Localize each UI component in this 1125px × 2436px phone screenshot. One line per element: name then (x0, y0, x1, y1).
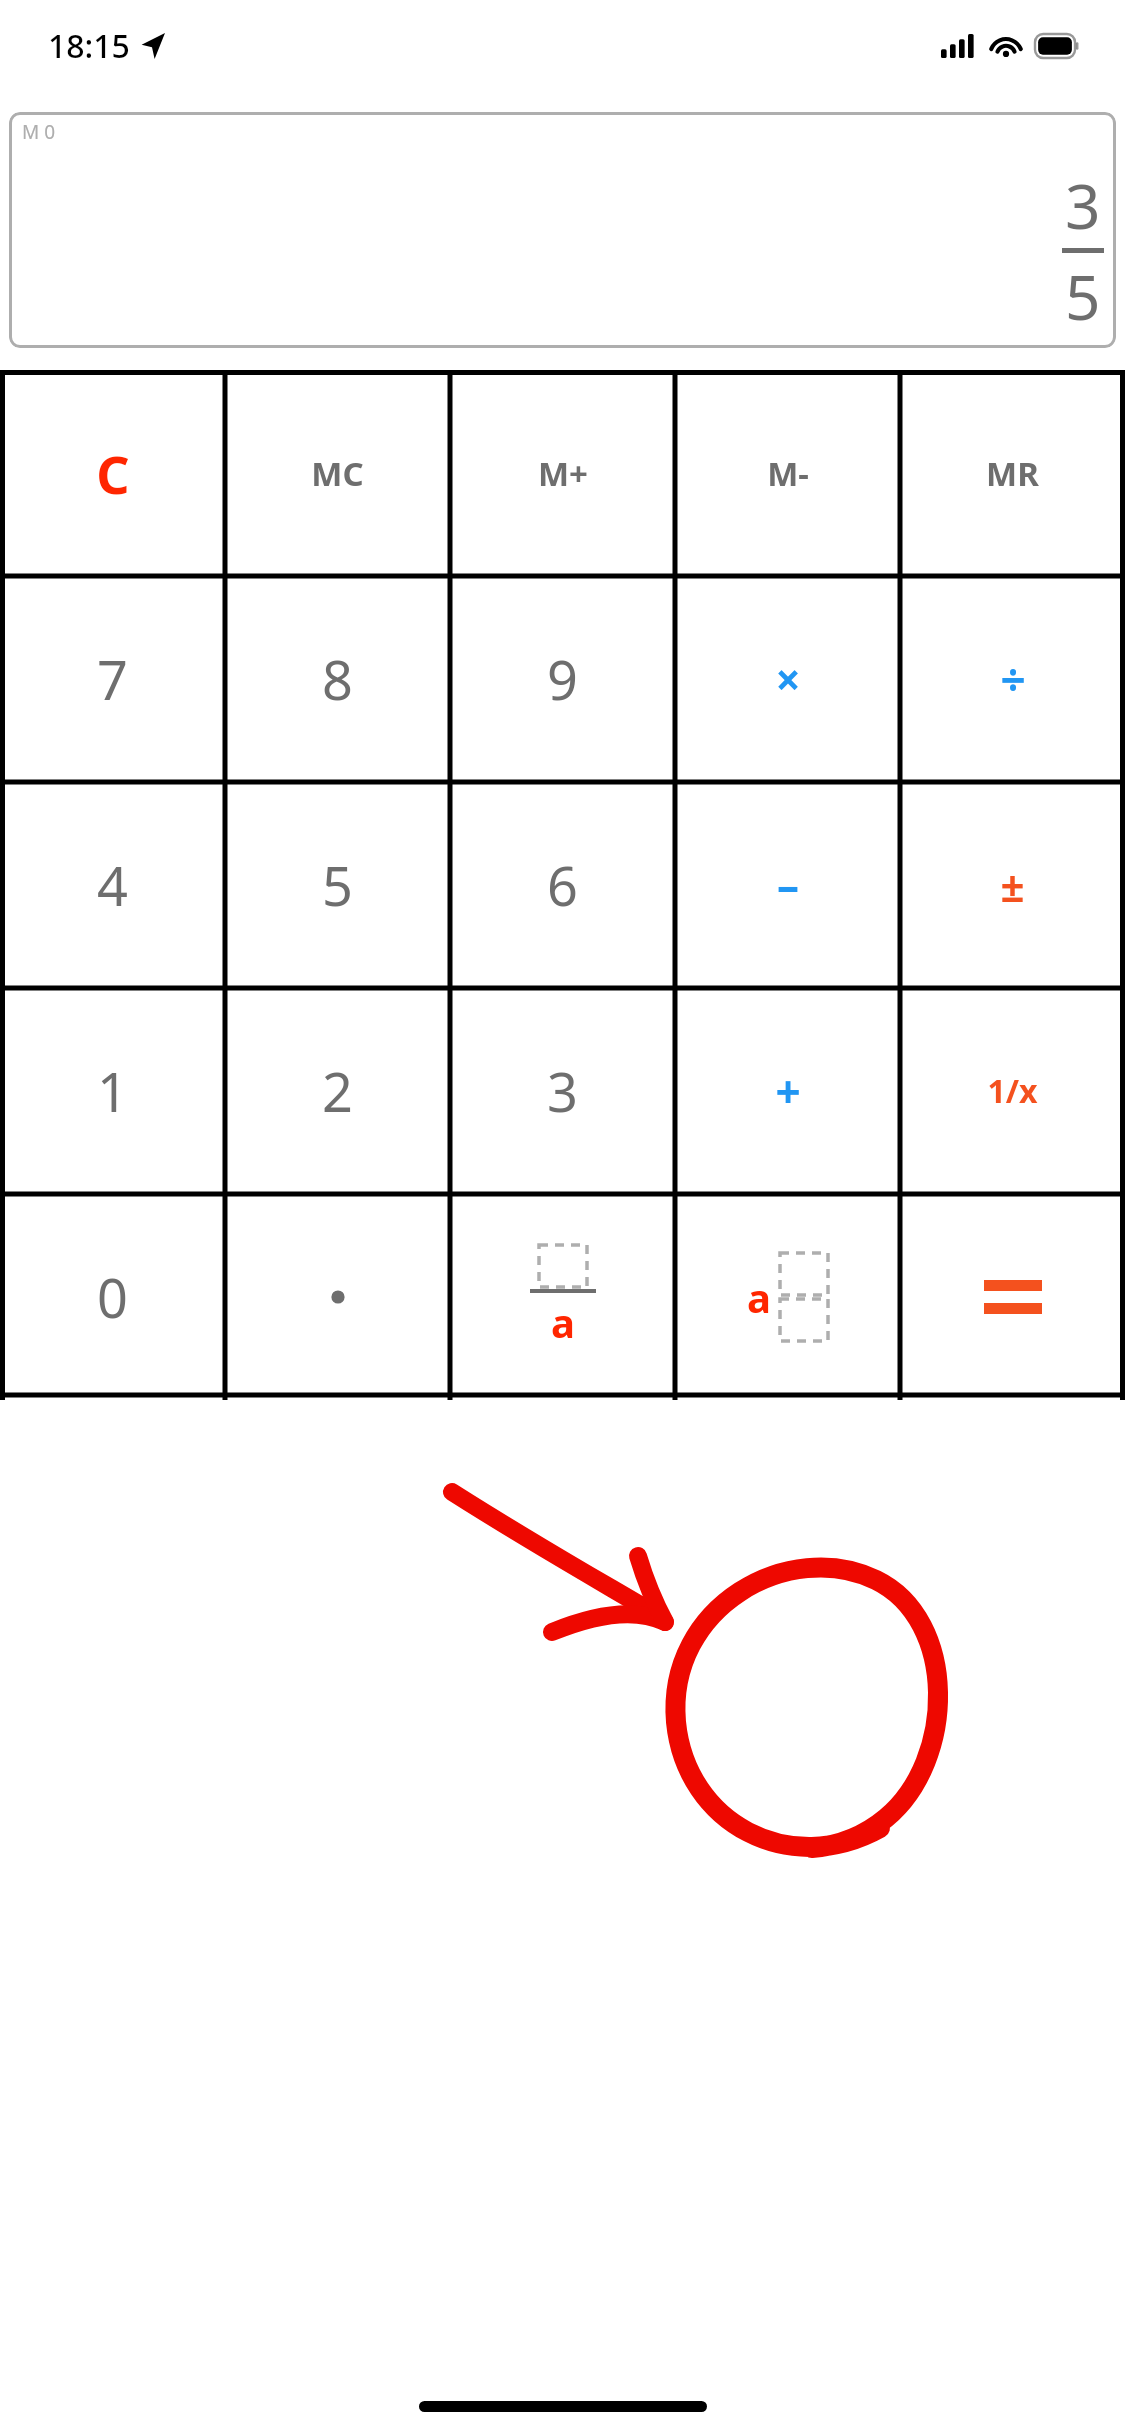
staticText: 7 (97, 642, 128, 716)
staticText: ÷ (1000, 649, 1026, 709)
staticText: 5 (322, 848, 353, 922)
staticText: 8 (322, 642, 353, 716)
staticText: – (777, 855, 799, 915)
button[interactable]: Equals (900, 1194, 1125, 1400)
button[interactable]: MR (900, 370, 1125, 576)
button[interactable]: M+ (450, 370, 675, 576)
button[interactable]: M- (675, 370, 900, 576)
button[interactable]: MC (225, 370, 450, 576)
button[interactable]: Fraction (450, 1194, 675, 1400)
button[interactable]: 8 (225, 576, 450, 782)
button[interactable]: 3 (450, 988, 675, 1194)
staticText: 3 (547, 1054, 578, 1128)
staticText: 6 (547, 848, 578, 922)
staticText: 0 (97, 1260, 128, 1334)
button[interactable]: 7 (0, 576, 225, 782)
staticText: MC (311, 451, 364, 496)
staticText: MR (986, 451, 1039, 496)
button[interactable]: ± (900, 782, 1125, 988)
button[interactable]: 1 (0, 988, 225, 1194)
button[interactable]: C (0, 370, 225, 576)
button[interactable]: ÷ (900, 576, 1125, 782)
button[interactable]: 5 (225, 782, 450, 988)
button[interactable]: Decimal point (225, 1194, 450, 1400)
button[interactable]: 6 (450, 782, 675, 988)
staticText: 18:15 (48, 24, 130, 68)
staticText: M- (767, 451, 809, 496)
button[interactable]: 1/x (900, 988, 1125, 1194)
staticText: 3 (1065, 163, 1101, 247)
staticText: ± (1000, 857, 1025, 914)
button[interactable]: 4 (0, 782, 225, 988)
staticText: a (551, 1295, 575, 1349)
button[interactable]: 0 (0, 1194, 225, 1400)
staticText: 4 (97, 848, 128, 922)
staticText: M+ (538, 451, 588, 496)
staticText: 5 (1065, 254, 1101, 338)
button[interactable]: M 0 (9, 112, 1116, 348)
staticText: C (96, 438, 130, 509)
button[interactable]: – (675, 782, 900, 988)
staticText: M 0 (22, 119, 56, 145)
button[interactable]: Mixed number (675, 1194, 900, 1400)
staticText: 1/x (987, 1069, 1038, 1113)
button[interactable]: + (675, 988, 900, 1194)
staticText: a (747, 1270, 771, 1324)
button[interactable]: 2 (225, 988, 450, 1194)
staticText: + (775, 1061, 801, 1121)
staticText: 1 (97, 1054, 128, 1128)
staticText: 9 (547, 642, 578, 716)
button[interactable]: 9 (450, 576, 675, 782)
staticText: × (775, 649, 801, 709)
button[interactable]: × (675, 576, 900, 782)
staticText: 2 (322, 1054, 353, 1128)
